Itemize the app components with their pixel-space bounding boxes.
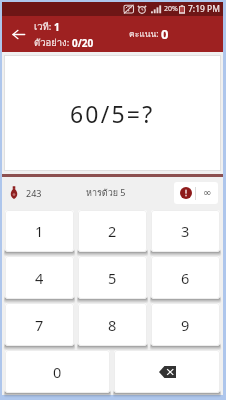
staticText: 8 [108,315,117,335]
staticText: 60/5=? [70,98,155,129]
staticText: เวที: [34,19,54,34]
staticText: หารด้วย 5 [86,186,126,200]
staticText: 3 [181,221,190,241]
staticText: 1 [35,221,44,241]
staticText: 243 [26,187,42,199]
staticText: 2 [108,221,117,241]
button[interactable]: Hint [174,182,218,204]
staticText: 0 [53,362,62,382]
other: Hint [180,187,192,199]
button[interactable]: 6 [151,256,220,299]
button[interactable]: 4 [5,256,74,299]
button[interactable]: 0 [5,350,110,393]
staticText: ∞ [203,187,212,199]
staticText: 1 [54,20,60,34]
staticText: 0/20 [72,36,94,50]
button[interactable]: Backspace [114,350,220,393]
staticText: 4 [35,268,44,288]
staticText: 9 [181,315,190,335]
staticText: 5 [108,268,117,288]
button[interactable]: 3 [151,210,220,252]
button[interactable]: Back [2,16,34,52]
staticText: 0 [161,25,169,43]
button[interactable]: 7 [5,303,74,346]
button[interactable]: 5 [78,256,147,299]
button[interactable]: 2 [78,210,147,252]
staticText: คะแนน: [129,27,161,41]
button[interactable]: 1 [5,210,74,252]
staticText: 7:19 PM [188,3,220,15]
staticText: 20% [164,4,178,14]
staticText: 7 [35,315,44,335]
button[interactable]: 8 [78,303,147,346]
staticText: 6 [181,268,190,288]
staticText: ตัวอย่าง: [34,35,72,50]
button[interactable]: 9 [151,303,220,346]
